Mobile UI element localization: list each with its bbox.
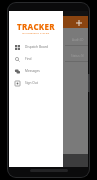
staticText: Dispatch Board [25, 45, 48, 49]
staticText: Find [25, 57, 32, 61]
button[interactable]: Completed Tasks [9, 154, 88, 167]
button[interactable]: Add [9, 16, 88, 28]
staticText: TRACKER [17, 21, 55, 32]
staticText: Sign Out [25, 81, 38, 85]
staticText: Messages [25, 69, 40, 73]
button[interactable]: Messages [9, 65, 63, 77]
button[interactable]: Dispatch Board [9, 41, 63, 53]
button[interactable]: Find [9, 53, 63, 65]
staticText: Audit ID [72, 38, 84, 42]
staticText: Status: N [71, 54, 84, 58]
button[interactable]: Add [74, 18, 83, 27]
button[interactable]: Audit ID [9, 36, 88, 44]
button[interactable]: Status: N [9, 52, 88, 60]
button[interactable]: Sign Out [9, 77, 63, 89]
staticText: MANAGEMENT SYSTEM [22, 32, 50, 35]
